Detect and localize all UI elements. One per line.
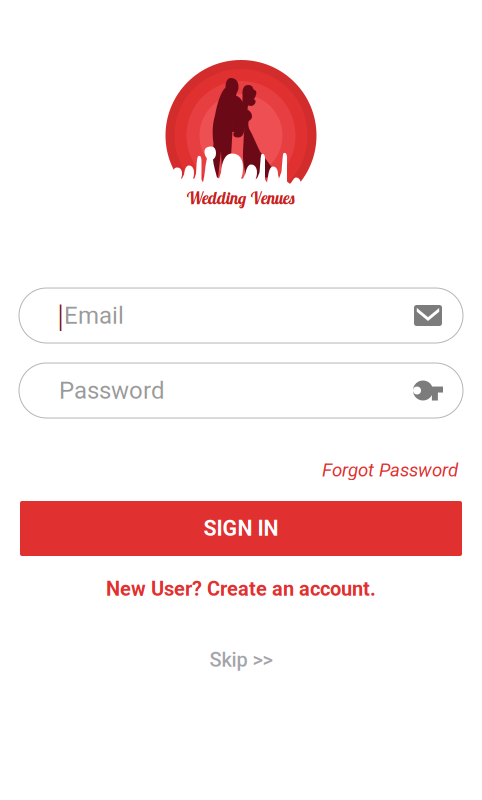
button[interactable]: Forgot Password <box>322 455 458 485</box>
staticText: Wedding Venues <box>186 187 296 208</box>
button[interactable]: Skip >> <box>209 648 272 672</box>
button[interactable]: SIGN IN <box>20 501 462 556</box>
staticText: | <box>57 297 64 334</box>
staticText: SIGN IN <box>203 516 278 541</box>
staticText: Email <box>64 301 124 329</box>
staticText: Forgot Password <box>322 459 458 481</box>
staticText: New User? Create an account. <box>106 577 376 601</box>
button[interactable]: New User? Create an account. <box>106 577 376 601</box>
staticText: Password <box>59 376 165 404</box>
staticText: Skip >> <box>209 648 272 672</box>
